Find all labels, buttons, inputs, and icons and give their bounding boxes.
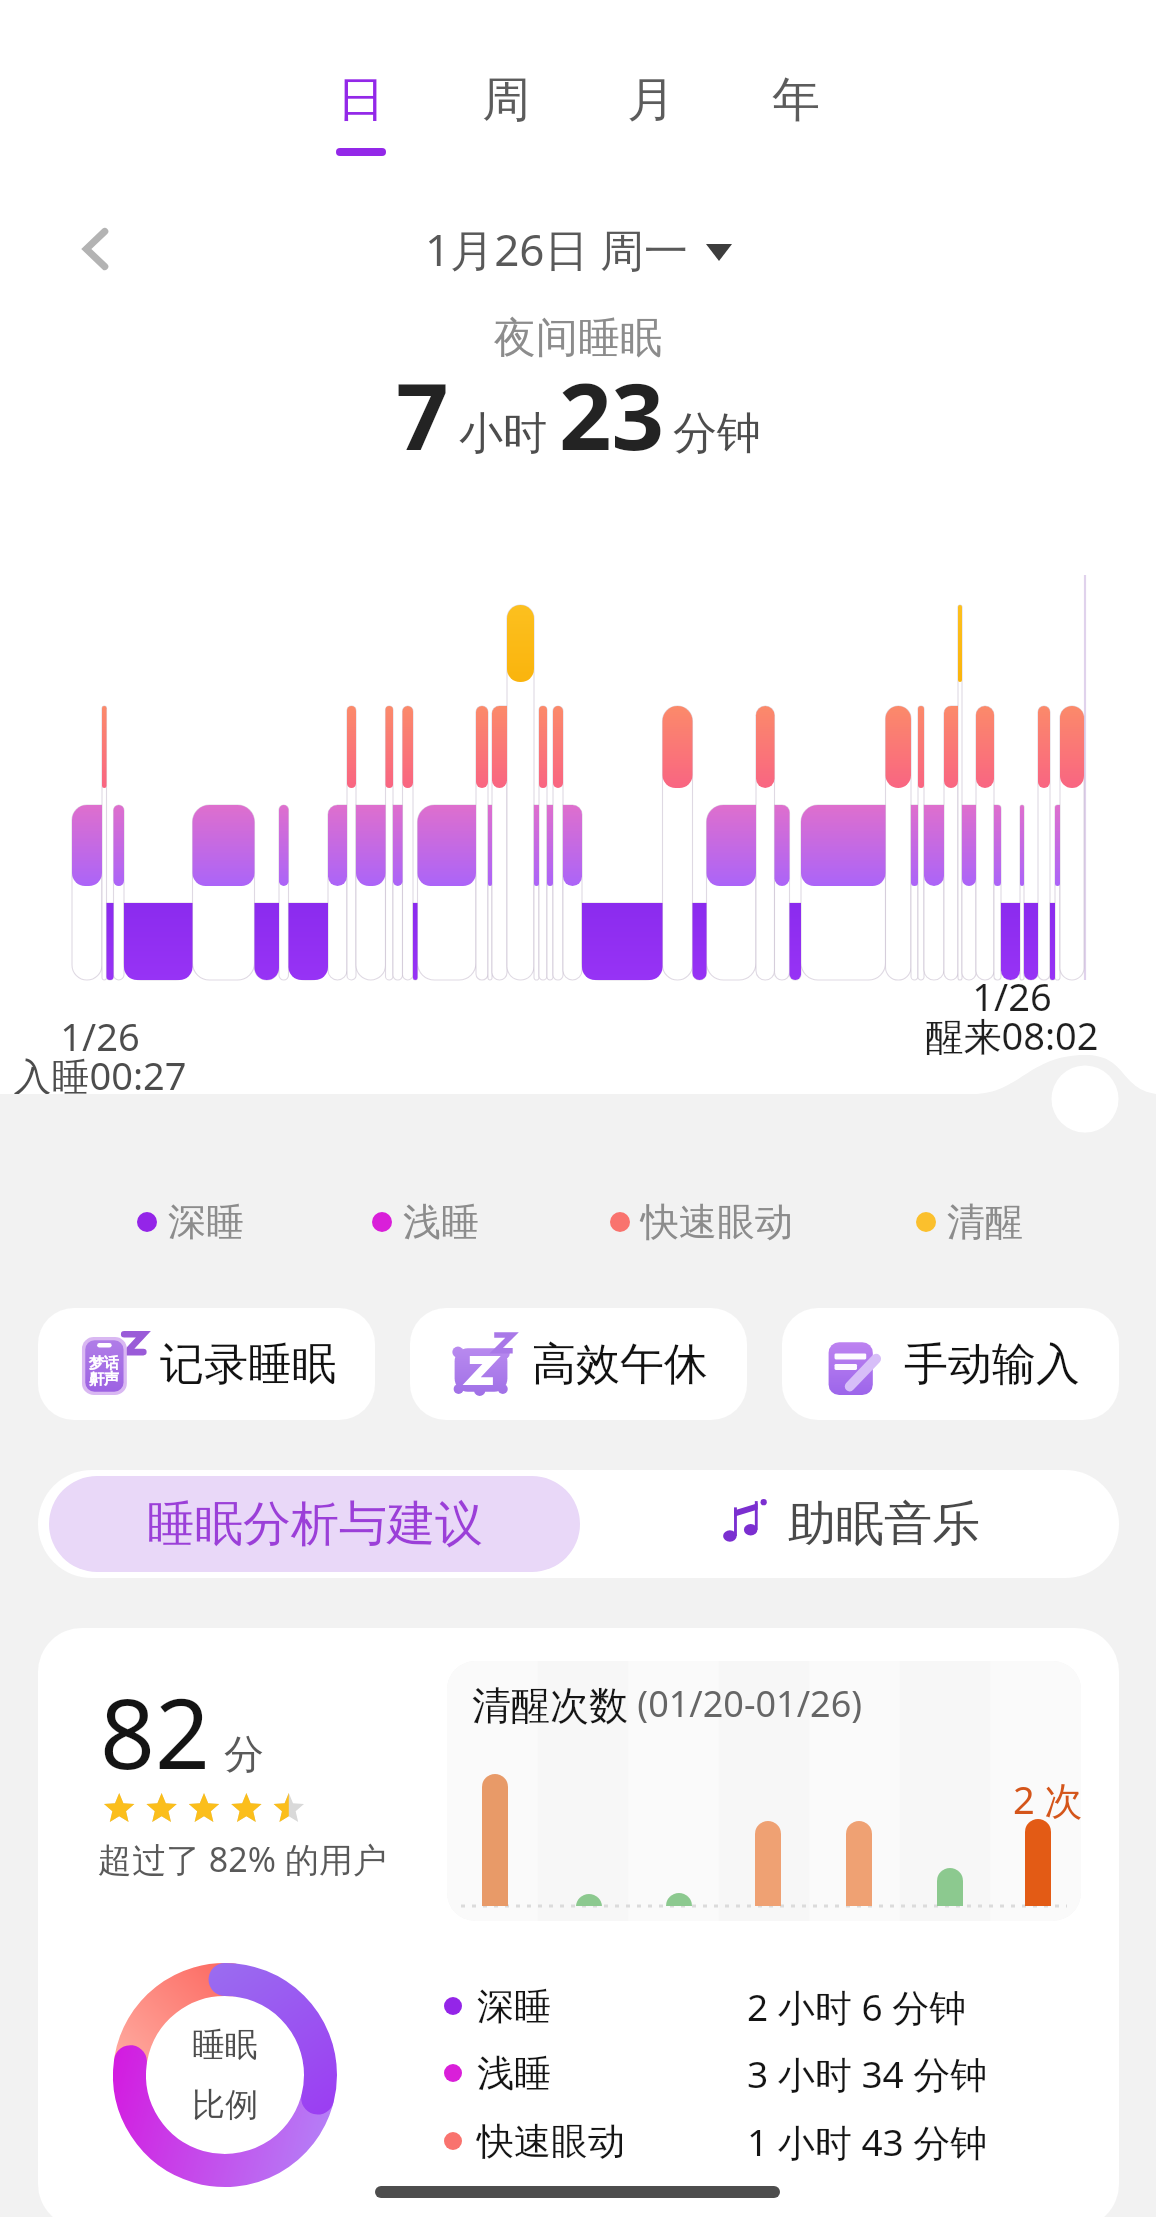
button[interactable]: 日 bbox=[288, 0, 433, 170]
staticText: 浅睡 bbox=[477, 2050, 551, 2097]
button[interactable]: 快速眼动 bbox=[444, 2115, 1119, 2167]
staticText: 2 小时 6 分钟 bbox=[747, 1981, 967, 2032]
staticText: 深睡 bbox=[168, 1198, 244, 1246]
staticText: 清醒次数 bbox=[472, 1681, 628, 1730]
staticText: 日 bbox=[337, 70, 385, 130]
button[interactable]: 周 bbox=[433, 0, 578, 170]
staticText: 1/26 醒来08:02 bbox=[912, 970, 1112, 1062]
staticText: 高效午休 bbox=[532, 1337, 708, 1392]
staticText: 快速眼动 bbox=[641, 1198, 793, 1246]
button[interactable]: 梦话 鼾声 bbox=[38, 1308, 375, 1420]
staticText: 梦话 鼾声 bbox=[85, 1354, 123, 1388]
staticText: 月 bbox=[627, 70, 675, 130]
button[interactable]: 浅睡 bbox=[444, 2047, 1119, 2099]
button[interactable]: 清醒 bbox=[916, 1198, 1023, 1246]
staticText: 年 bbox=[772, 70, 820, 130]
staticText: 3 小时 34 分钟 bbox=[747, 2048, 988, 2099]
staticText: 2 次 bbox=[1013, 1773, 1081, 1825]
button[interactable]: 手动输入 bbox=[782, 1308, 1119, 1420]
staticText: 手动输入 bbox=[904, 1337, 1080, 1392]
button[interactable]: 年 bbox=[723, 0, 868, 170]
staticText: 睡眠分析与建议 bbox=[147, 1494, 483, 1554]
staticText: 助眠音乐 bbox=[788, 1494, 980, 1554]
staticText: 7 bbox=[396, 352, 449, 477]
staticText: 1/26 入睡00:27 bbox=[2, 1010, 198, 1102]
staticText: 记录睡眠 bbox=[160, 1337, 336, 1392]
staticText: 分 bbox=[224, 1729, 264, 1779]
staticText: 深睡 bbox=[477, 1983, 551, 2030]
staticText: 睡眠 比例 bbox=[192, 2024, 258, 2126]
button[interactable]: 快速眼动 bbox=[610, 1198, 793, 1246]
staticText: 82 bbox=[100, 1666, 210, 1797]
staticText: 1月26日 周一 bbox=[425, 219, 688, 279]
staticText: 快速眼动 bbox=[477, 2118, 625, 2165]
button[interactable]: 高效午休 bbox=[410, 1308, 747, 1420]
button[interactable]: 睡眠分析与建议 bbox=[49, 1476, 580, 1572]
staticText: 周 bbox=[482, 70, 530, 130]
button[interactable]: 助眠音乐 bbox=[580, 1470, 1119, 1578]
staticText: 小时 bbox=[459, 406, 547, 461]
button[interactable]: 深睡 bbox=[444, 1980, 1119, 2032]
staticText: 超过了 82% 的用户 bbox=[98, 1836, 387, 1882]
staticText: 浅睡 bbox=[403, 1198, 479, 1246]
staticText: 1 小时 43 分钟 bbox=[747, 2116, 988, 2167]
staticText: 23 bbox=[559, 352, 665, 477]
staticText: 分钟 bbox=[673, 406, 761, 461]
button[interactable]: 月 bbox=[578, 0, 723, 170]
staticText: 清醒 bbox=[947, 1198, 1023, 1246]
button[interactable]: 1月26日 周一 bbox=[425, 219, 732, 279]
staticText: 夜间睡眠 bbox=[494, 312, 662, 365]
button[interactable]: 浅睡 bbox=[372, 1198, 479, 1246]
button[interactable]: Back bbox=[56, 209, 136, 289]
staticText: (01/20-01/26) bbox=[628, 1679, 863, 1728]
button[interactable]: 深睡 bbox=[137, 1198, 244, 1246]
